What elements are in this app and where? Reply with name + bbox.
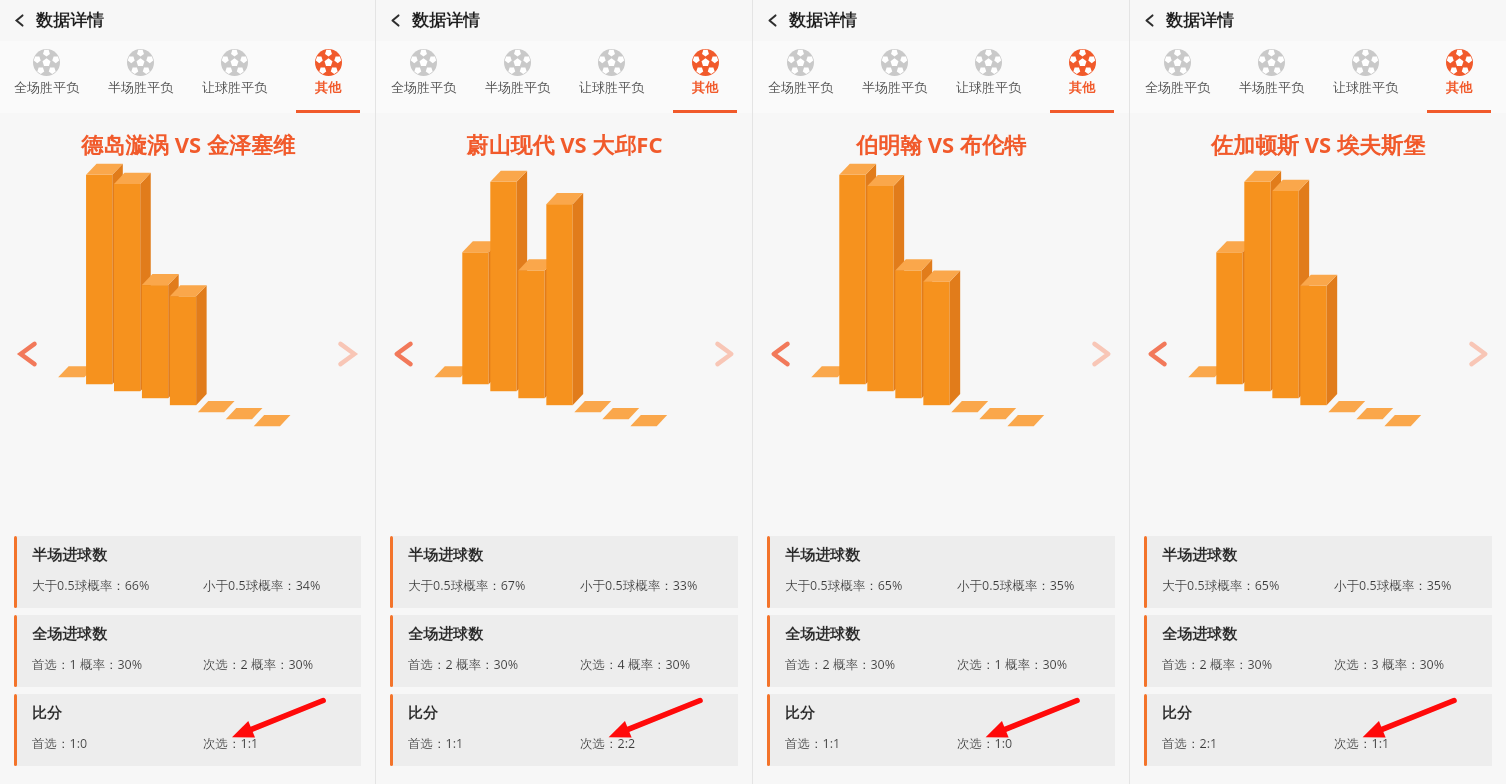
button[interactable]: 比分 xyxy=(390,694,738,766)
staticText: 半场进球数 xyxy=(32,546,107,565)
button[interactable]: Previous match xyxy=(382,331,428,377)
staticText: 数据详情 xyxy=(412,10,480,31)
staticText: 首选：1:0 xyxy=(32,735,88,752)
button[interactable]: 半场胜平负 xyxy=(93,41,187,113)
button[interactable]: 全场进球数 xyxy=(1144,615,1492,687)
staticText: 数据详情 xyxy=(36,10,104,31)
staticText: 首选：2 概率：30% xyxy=(408,656,519,673)
button[interactable]: 其他 xyxy=(658,41,752,113)
button[interactable]: 全场胜平负 xyxy=(0,41,93,113)
button[interactable]: 全场进球数 xyxy=(767,615,1115,687)
button[interactable]: 让球胜平负 xyxy=(1318,41,1412,113)
staticText: 数据详情 xyxy=(789,10,857,31)
staticText: 德岛漩涡 VS 金泽塞维 xyxy=(81,129,295,159)
button[interactable]: 半场进球数 xyxy=(767,536,1115,608)
button[interactable]: 让球胜平负 xyxy=(187,41,281,113)
button[interactable]: 让球胜平负 xyxy=(941,41,1035,113)
button[interactable]: Next match xyxy=(700,331,746,377)
staticText: 比分 xyxy=(408,704,438,723)
staticText: 全场进球数 xyxy=(785,625,860,644)
staticText: 小于0.5球概率：35% xyxy=(1334,577,1452,594)
staticText: 次选：3 概率：30% xyxy=(1334,656,1445,673)
staticText: 首选：1:1 xyxy=(785,735,841,752)
staticText: 次选：1:1 xyxy=(1334,735,1390,752)
button[interactable]: 全场胜平负 xyxy=(1130,41,1224,113)
staticText: 全场胜平负 xyxy=(14,79,79,95)
button[interactable]: Next match xyxy=(1454,331,1500,377)
button[interactable]: Back xyxy=(1142,0,1234,41)
staticText: 次选：2:2 xyxy=(580,735,636,752)
staticText: 蔚山现代 VS 大邱FC xyxy=(466,129,663,159)
staticText: 让球胜平负 xyxy=(1333,79,1398,95)
staticText: 其他 xyxy=(1069,79,1095,95)
staticText: 首选：1 概率：30% xyxy=(32,656,143,673)
staticText: 首选：2:1 xyxy=(1162,735,1218,752)
staticText: 让球胜平负 xyxy=(202,79,267,95)
staticText: 全场胜平负 xyxy=(768,79,833,95)
staticText: 大于0.5球概率：65% xyxy=(1162,577,1280,594)
staticText: 半场胜平负 xyxy=(1239,79,1304,95)
button[interactable]: 半场胜平负 xyxy=(847,41,941,113)
staticText: 次选：2 概率：30% xyxy=(203,656,314,673)
staticText: 半场进球数 xyxy=(1162,546,1237,565)
button[interactable]: Back xyxy=(388,0,480,41)
staticText: 首选：1:1 xyxy=(408,735,464,752)
staticText: 大于0.5球概率：65% xyxy=(785,577,903,594)
staticText: 首选：2 概率：30% xyxy=(1162,656,1273,673)
button[interactable]: Previous match xyxy=(6,331,52,377)
staticText: 让球胜平负 xyxy=(579,79,644,95)
button[interactable]: 其他 xyxy=(1412,41,1506,113)
button[interactable]: 半场进球数 xyxy=(14,536,361,608)
button[interactable]: 半场进球数 xyxy=(390,536,738,608)
staticText: 大于0.5球概率：66% xyxy=(32,577,150,594)
button[interactable]: 其他 xyxy=(281,41,375,113)
staticText: 全场胜平负 xyxy=(1145,79,1210,95)
staticText: 其他 xyxy=(1446,79,1472,95)
staticText: 小于0.5球概率：33% xyxy=(580,577,698,594)
button[interactable]: 全场胜平负 xyxy=(753,41,847,113)
staticText: 全场进球数 xyxy=(32,625,107,644)
staticText: 让球胜平负 xyxy=(956,79,1021,95)
staticText: 半场胜平负 xyxy=(108,79,173,95)
button[interactable]: 半场胜平负 xyxy=(470,41,564,113)
staticText: 次选：4 概率：30% xyxy=(580,656,691,673)
button[interactable]: 比分 xyxy=(767,694,1115,766)
staticText: 次选：1 概率：30% xyxy=(957,656,1068,673)
staticText: 比分 xyxy=(1162,704,1192,723)
staticText: 半场进球数 xyxy=(408,546,483,565)
button[interactable]: 全场进球数 xyxy=(390,615,738,687)
staticText: 半场进球数 xyxy=(785,546,860,565)
button[interactable]: Back xyxy=(765,0,857,41)
staticText: 首选：2 概率：30% xyxy=(785,656,896,673)
staticText: 小于0.5球概率：34% xyxy=(203,577,321,594)
staticText: 半场胜平负 xyxy=(862,79,927,95)
button[interactable]: 比分 xyxy=(1144,694,1492,766)
staticText: 全场进球数 xyxy=(408,625,483,644)
button[interactable]: 半场胜平负 xyxy=(1224,41,1318,113)
staticText: 佐加顿斯 VS 埃夫斯堡 xyxy=(1211,129,1425,159)
button[interactable]: 其他 xyxy=(1035,41,1129,113)
staticText: 比分 xyxy=(32,704,62,723)
staticText: 其他 xyxy=(315,79,341,95)
staticText: 全场胜平负 xyxy=(391,79,456,95)
staticText: 次选：1:0 xyxy=(957,735,1013,752)
button[interactable]: 全场胜平负 xyxy=(376,41,470,113)
button[interactable]: Previous match xyxy=(759,331,805,377)
button[interactable]: 全场进球数 xyxy=(14,615,361,687)
staticText: 次选：1:1 xyxy=(203,735,259,752)
button[interactable]: Previous match xyxy=(1136,331,1182,377)
button[interactable]: Next match xyxy=(323,331,369,377)
staticText: 数据详情 xyxy=(1166,10,1234,31)
button[interactable]: 让球胜平负 xyxy=(564,41,658,113)
staticText: 半场胜平负 xyxy=(485,79,550,95)
button[interactable]: Next match xyxy=(1077,331,1123,377)
button[interactable]: Back xyxy=(12,0,104,41)
button[interactable]: 半场进球数 xyxy=(1144,536,1492,608)
staticText: 比分 xyxy=(785,704,815,723)
staticText: 大于0.5球概率：67% xyxy=(408,577,526,594)
staticText: 全场进球数 xyxy=(1162,625,1237,644)
staticText: 小于0.5球概率：35% xyxy=(957,577,1075,594)
button[interactable]: 比分 xyxy=(14,694,361,766)
staticText: 伯明翰 VS 布伦特 xyxy=(856,129,1026,159)
staticText: 其他 xyxy=(692,79,718,95)
